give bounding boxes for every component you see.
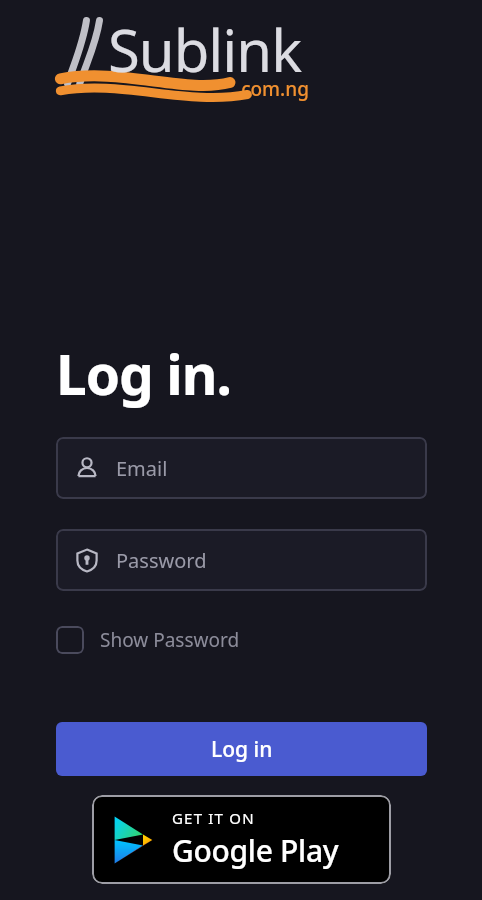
- button[interactable]: Email: [56, 437, 427, 499]
- staticText: Log in.: [56, 336, 231, 411]
- button[interactable]: Show Password: [56, 620, 240, 660]
- staticText: GET IT ON: [172, 808, 255, 828]
- button[interactable]: Log in: [56, 722, 427, 776]
- staticText: Show Password: [100, 627, 240, 653]
- staticText: Password: [116, 547, 207, 574]
- staticText: Sublink: [108, 10, 302, 89]
- button[interactable]: Password: [56, 529, 427, 591]
- staticText: .com.ng: [236, 76, 309, 102]
- staticText: Log in: [211, 735, 273, 764]
- button[interactable]: Get it on Google Play: [92, 795, 391, 884]
- staticText: Email: [116, 455, 168, 482]
- staticText: Google Play: [172, 830, 339, 871]
